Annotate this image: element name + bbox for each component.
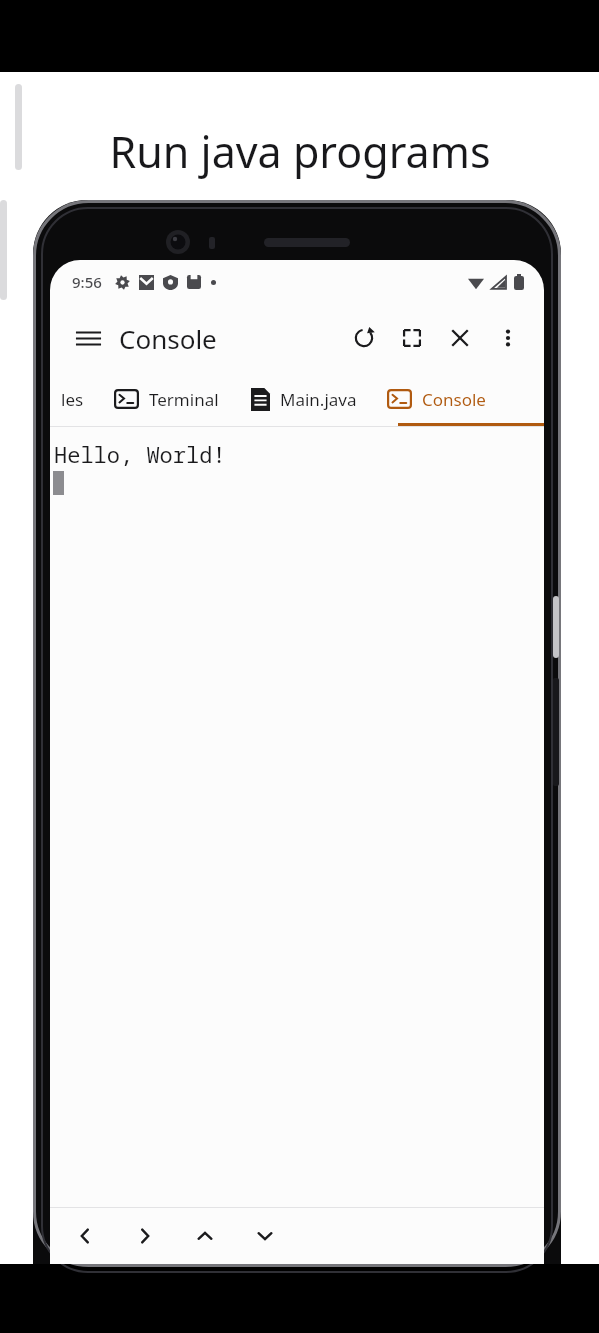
button[interactable]: Console — [385, 372, 488, 426]
staticText: Terminal — [149, 388, 219, 411]
staticText: 9:56 — [72, 272, 102, 292]
button[interactable]: Down — [242, 1213, 288, 1259]
staticText: Console — [422, 388, 486, 411]
staticText: Console — [119, 321, 217, 356]
button[interactable]: Refresh — [340, 314, 388, 362]
staticText: les — [61, 388, 84, 411]
button[interactable]: les — [50, 372, 84, 426]
button[interactable]: Fullscreen — [388, 314, 436, 362]
button[interactable]: Terminal — [112, 372, 221, 426]
button[interactable]: Menu — [66, 316, 110, 360]
button[interactable]: Previous — [62, 1213, 108, 1259]
staticText: Run java programs — [109, 122, 491, 181]
staticText: Main.java — [280, 388, 357, 411]
button[interactable]: More options — [484, 314, 532, 362]
staticText: Hello, World! — [54, 439, 226, 469]
button[interactable]: Close — [436, 314, 484, 362]
button[interactable]: Main.java — [249, 372, 359, 426]
button[interactable]: Next — [122, 1213, 168, 1259]
button[interactable]: Up — [182, 1213, 228, 1259]
